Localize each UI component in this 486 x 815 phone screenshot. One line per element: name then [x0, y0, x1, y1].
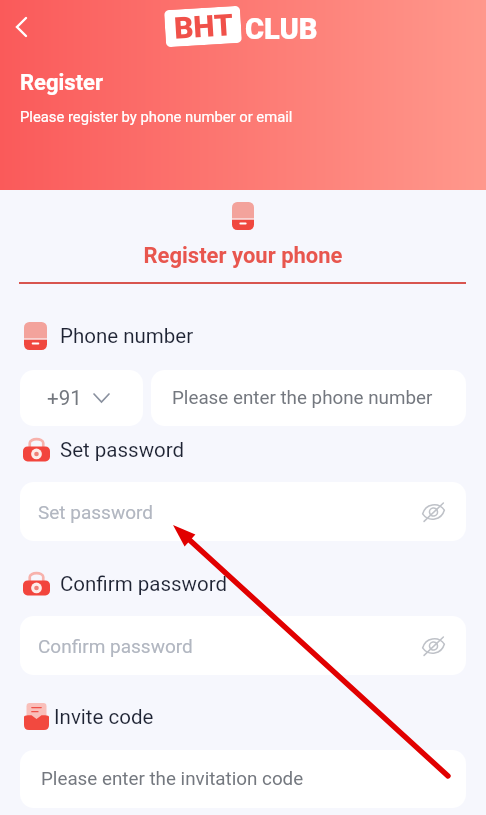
- button[interactable]: Confirm password: [20, 616, 466, 675]
- staticText: Confirm password: [60, 572, 227, 596]
- button[interactable]: Please enter the phone number: [151, 370, 466, 426]
- staticText: Please enter the phone number: [172, 387, 433, 409]
- staticText: Register your phone: [0, 243, 486, 269]
- staticText: BHT: [173, 7, 234, 46]
- staticText: Please enter the invitation code: [41, 768, 304, 790]
- button[interactable]: Set password: [20, 482, 466, 541]
- staticText: CLUB: [245, 12, 318, 46]
- staticText: Please register by phone number or email: [20, 108, 293, 125]
- staticText: Confirm password: [38, 635, 193, 657]
- staticText: Invite code: [54, 705, 154, 729]
- staticText: Set password: [38, 501, 153, 523]
- staticText: Phone number: [60, 324, 194, 348]
- staticText: Set password: [60, 438, 185, 462]
- staticText: +91: [47, 386, 82, 410]
- button[interactable]: Please enter the invitation code: [20, 750, 466, 808]
- button[interactable]: Show password: [418, 497, 448, 527]
- button[interactable]: Show password: [418, 631, 448, 661]
- staticText: Register: [20, 70, 104, 96]
- button[interactable]: Back: [0, 6, 42, 48]
- button[interactable]: +91: [20, 370, 143, 426]
